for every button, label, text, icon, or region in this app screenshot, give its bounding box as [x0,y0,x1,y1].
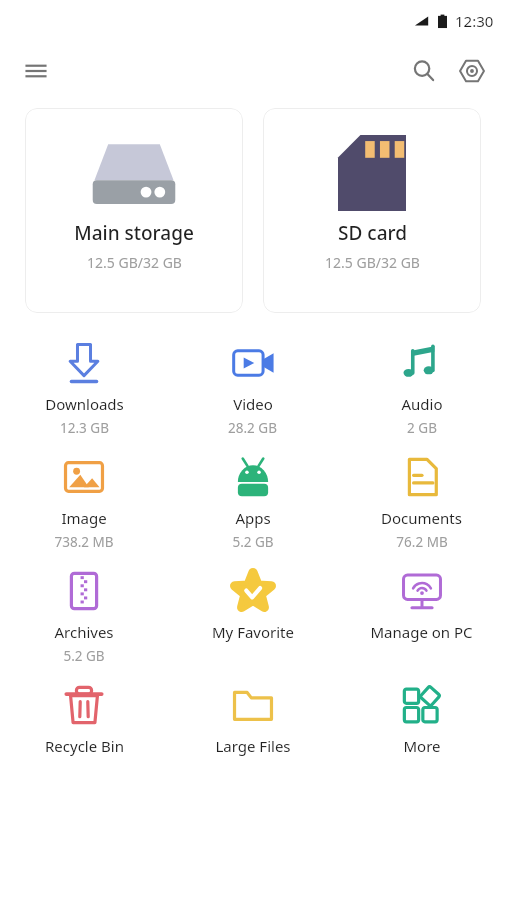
button[interactable]: Search [400,47,448,95]
button[interactable]: Audio [337,335,506,441]
staticText: 12.5 GB/32 GB [325,253,420,272]
staticText: 738.2 MB [54,533,114,551]
staticText: My Favorite [212,622,294,642]
staticText: Audio [401,394,443,414]
staticText: 2 GB [407,419,437,437]
staticText: 76.2 MB [396,533,448,551]
staticText: 5.2 GB [63,647,105,665]
staticText: Image [61,508,107,528]
button[interactable]: Settings [448,47,496,95]
staticText: Downloads [45,394,124,414]
staticText: Video [233,394,273,414]
staticText: Manage on PC [370,622,473,642]
button[interactable]: Large Files [168,677,337,760]
button[interactable]: Manage on PC [337,563,506,646]
button[interactable]: SD card [263,108,481,313]
button[interactable]: Menu [14,49,58,93]
staticText: 12:30 [455,11,494,31]
staticText: Documents [381,508,462,528]
staticText: Main storage [74,220,194,246]
button[interactable]: Image [0,449,168,555]
button[interactable]: More [337,677,506,760]
button[interactable]: Documents [337,449,506,555]
button[interactable]: Video [168,335,337,441]
button[interactable]: Main storage [25,108,243,313]
button[interactable]: Recycle Bin [0,677,168,760]
staticText: 12.5 GB/32 GB [87,253,182,272]
staticText: Apps [235,508,271,528]
button[interactable]: Archives [0,563,168,669]
staticText: 28.2 GB [228,419,277,437]
button[interactable]: Apps [168,449,337,555]
button[interactable]: My Favorite [168,563,337,646]
staticText: Large Files [215,736,291,756]
staticText: 5.2 GB [232,533,274,551]
staticText: Recycle Bin [45,736,124,756]
staticText: SD card [338,220,407,246]
staticText: 12.3 GB [60,419,109,437]
staticText: Archives [54,622,114,642]
staticText: More [403,736,441,756]
button[interactable]: Downloads [0,335,168,441]
